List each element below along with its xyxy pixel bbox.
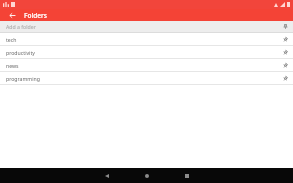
staticText: productivity bbox=[6, 49, 277, 56]
staticText: Add a folder bbox=[6, 23, 36, 30]
button[interactable]: news bbox=[0, 59, 293, 71]
staticText: news bbox=[6, 62, 277, 69]
staticText: tech bbox=[6, 36, 277, 43]
button[interactable]: Recent apps bbox=[167, 168, 207, 183]
button[interactable]: Pin folder bbox=[277, 21, 293, 32]
button[interactable]: programming bbox=[0, 72, 293, 84]
staticText: Folders bbox=[24, 11, 47, 20]
button[interactable]: Add a folder bbox=[0, 21, 293, 32]
button[interactable]: tech bbox=[0, 33, 293, 45]
button[interactable]: Pin news bbox=[277, 59, 293, 71]
button[interactable]: productivity bbox=[0, 46, 293, 58]
button[interactable]: Pin productivity bbox=[277, 46, 293, 58]
button[interactable]: Pin programming bbox=[277, 72, 293, 84]
button[interactable]: Navigate up bbox=[0, 9, 24, 21]
staticText: programming bbox=[6, 75, 277, 82]
button[interactable]: Back bbox=[87, 168, 127, 183]
button[interactable]: Pin tech bbox=[277, 33, 293, 45]
button[interactable]: Home bbox=[127, 168, 167, 183]
